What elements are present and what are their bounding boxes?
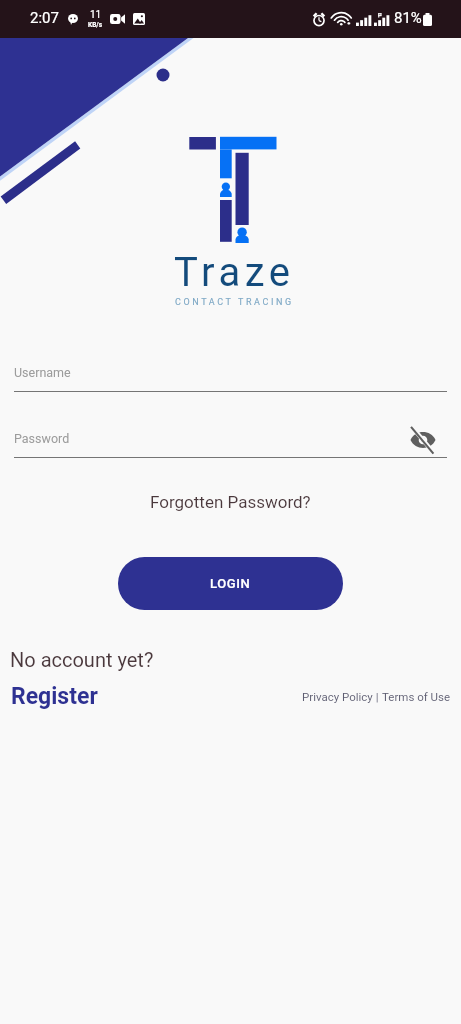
staticText: LOGIN bbox=[210, 576, 251, 591]
staticText: KB/s bbox=[88, 21, 103, 29]
staticText: 81% bbox=[394, 9, 422, 27]
staticText: Register bbox=[11, 683, 98, 710]
button[interactable]: Show password bbox=[406, 423, 440, 457]
button[interactable]: Privacy Policy bbox=[302, 690, 373, 703]
staticText: 11 bbox=[90, 9, 102, 21]
staticText: No account yet? bbox=[10, 648, 154, 671]
staticText: Password bbox=[14, 431, 70, 446]
button[interactable]: Forgotten Password? bbox=[142, 490, 319, 514]
staticText: 2:07 bbox=[30, 9, 59, 27]
staticText: Forgotten Password? bbox=[150, 492, 311, 512]
button[interactable]: Terms of Use bbox=[382, 690, 451, 703]
staticText: | bbox=[373, 690, 382, 703]
button[interactable]: LOGIN bbox=[118, 557, 343, 610]
staticText: CONTACT TRACING bbox=[175, 297, 294, 308]
button[interactable]: Register bbox=[9, 683, 100, 710]
staticText: Username bbox=[14, 365, 71, 380]
staticText: Privacy Policy bbox=[302, 690, 373, 703]
staticText: Terms of Use bbox=[382, 690, 451, 703]
staticText: Traze bbox=[174, 249, 295, 296]
